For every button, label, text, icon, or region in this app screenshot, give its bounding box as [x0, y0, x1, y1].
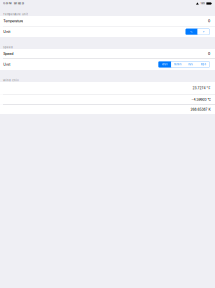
staticText: m/min — [174, 63, 181, 66]
staticText: km/h — [162, 63, 167, 66]
staticText: m/s — [188, 63, 192, 66]
button[interactable]: °F — [198, 29, 210, 35]
staticText: 100% — [200, 2, 205, 5]
staticText: °F — [203, 30, 205, 33]
staticText: Temperature — [3, 19, 23, 23]
staticText: °C — [190, 30, 193, 33]
staticText: Temperature Unit — [3, 13, 28, 16]
staticText: Unit — [3, 62, 10, 67]
staticText: 0 — [208, 19, 210, 23]
staticText: mph — [201, 63, 206, 66]
staticText: 0 — [208, 52, 210, 56]
button[interactable]: m/s — [184, 61, 197, 67]
button[interactable]: mph — [197, 61, 210, 67]
staticText: Speed — [3, 46, 13, 49]
staticText: Speed — [3, 52, 13, 56]
button[interactable]: km/h — [158, 61, 171, 67]
staticText: Sun Sep 28 — [12, 2, 24, 5]
button[interactable]: m/min — [171, 61, 184, 67]
staticText: 10:09 PM — [3, 2, 12, 5]
staticText: Unit — [3, 29, 10, 34]
staticText: -4.59603 °C — [191, 97, 210, 101]
button[interactable]: °C — [186, 29, 198, 35]
staticText: 23.7274 °F — [192, 86, 210, 90]
staticText: 268.65387 K — [190, 107, 210, 111]
staticText: Wind Chill — [3, 79, 19, 82]
